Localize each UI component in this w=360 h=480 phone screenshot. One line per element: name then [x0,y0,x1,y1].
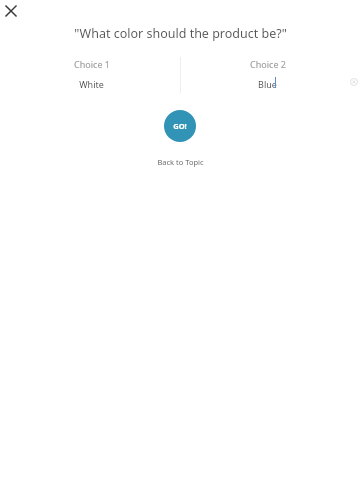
button[interactable]: Close [0,0,23,23]
button[interactable]: GO! [164,110,196,142]
staticText: Choice 1 [74,58,110,70]
staticText: "What color should the product be?" [74,25,287,42]
staticText: White [79,78,104,90]
button[interactable]: Clear [346,74,360,90]
button[interactable]: White [41,76,142,91]
staticText: Blue [258,78,277,90]
button[interactable]: Blue [217,76,318,91]
staticText: Back to Topic [157,157,204,167]
staticText: GO! [173,121,187,131]
staticText: Choice 2 [250,58,286,70]
button[interactable]: Back to Topic [130,155,230,169]
